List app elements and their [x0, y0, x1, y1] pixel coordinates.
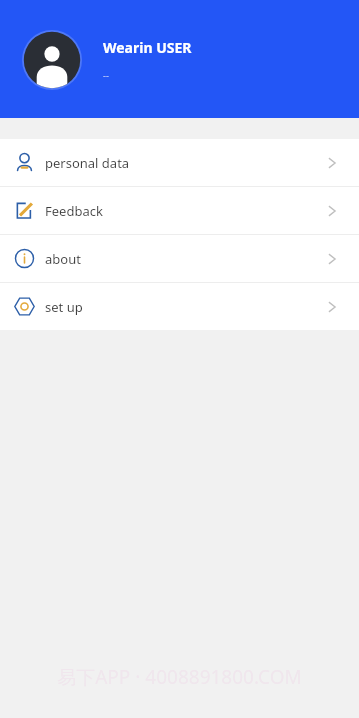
button[interactable]: Feedback: [0, 187, 359, 234]
button[interactable]: about: [0, 235, 359, 282]
staticText: about: [45, 250, 325, 268]
staticText: Wearin USER: [103, 38, 192, 57]
staticText: set up: [45, 298, 325, 316]
staticText: personal data: [45, 154, 325, 172]
staticText: Feedback: [45, 202, 325, 220]
button[interactable]: personal data: [0, 139, 359, 186]
button[interactable]: set up: [0, 283, 359, 330]
button[interactable]: Wearin USER: [22, 30, 359, 90]
staticText: 易下APP · 4008891800.COM: [57, 664, 302, 690]
staticText: --: [103, 69, 109, 81]
